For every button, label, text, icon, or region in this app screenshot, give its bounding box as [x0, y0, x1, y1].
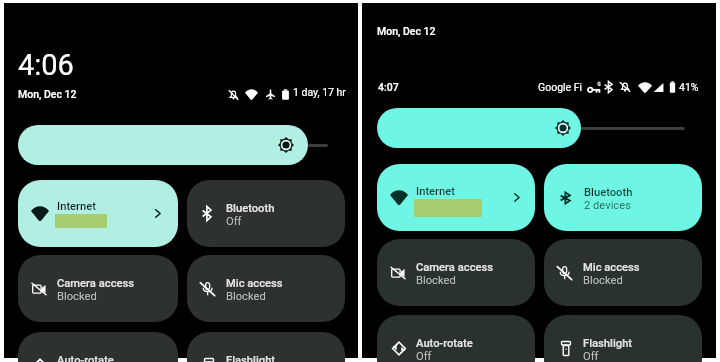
staticText: Mic access: [583, 261, 640, 274]
button[interactable]: Flashlight: [544, 315, 702, 362]
button[interactable]: Brightness: [18, 125, 308, 165]
staticText: Off: [416, 350, 432, 362]
staticText: Internet: [57, 200, 96, 213]
staticText: Auto-rotate: [57, 354, 114, 362]
staticText: Bluetooth: [226, 202, 275, 215]
button[interactable]: Internet: [18, 180, 178, 247]
staticText: Blocked: [226, 290, 266, 303]
staticText: Blocked: [583, 274, 623, 287]
button[interactable]: Camera access: [377, 239, 535, 306]
staticText: 4:06: [18, 48, 74, 82]
button[interactable]: Brightness: [377, 108, 581, 148]
staticText: Flashlight: [583, 337, 633, 350]
button[interactable]: Mic access: [187, 255, 345, 322]
staticText: Mon, Dec 12: [18, 88, 77, 100]
button[interactable]: Bluetooth: [544, 164, 702, 231]
staticText: Auto-rotate: [416, 337, 473, 350]
staticText: 41%: [679, 81, 699, 93]
staticText: 2 devices: [584, 199, 631, 212]
staticText: 1 day, 17 hr: [293, 86, 346, 98]
staticText: Camera access: [57, 277, 135, 290]
staticText: Mon, Dec 12: [377, 25, 436, 37]
staticText: Off: [226, 215, 242, 228]
button[interactable]: Flashlight: [187, 332, 345, 362]
button[interactable]: Auto-rotate: [18, 332, 178, 362]
staticText: Blocked: [416, 274, 456, 287]
staticText: Bluetooth: [584, 186, 633, 199]
staticText: 4:07: [378, 81, 399, 93]
button[interactable]: Internet: [377, 164, 535, 231]
staticText: Mic access: [226, 277, 283, 290]
button[interactable]: Mic access: [544, 239, 702, 306]
button[interactable]: Bluetooth: [187, 180, 345, 247]
staticText: Flashlight: [226, 354, 276, 362]
staticText: Blocked: [57, 290, 97, 303]
button[interactable]: Auto-rotate: [377, 315, 535, 362]
staticText: Internet: [416, 185, 455, 198]
staticText: Off: [583, 350, 599, 362]
button[interactable]: Camera access: [18, 255, 178, 322]
staticText: Camera access: [416, 261, 494, 274]
staticText: Google Fi: [538, 81, 583, 93]
